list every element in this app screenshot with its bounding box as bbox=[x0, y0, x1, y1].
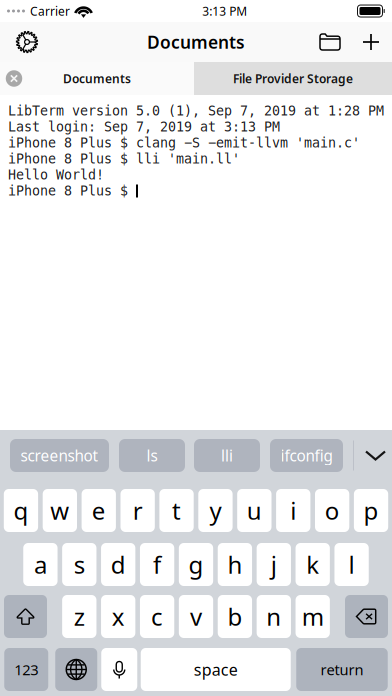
staticText: y bbox=[209, 494, 221, 527]
button[interactable]: q bbox=[4, 489, 38, 532]
staticText: m bbox=[302, 600, 324, 633]
staticText: q bbox=[13, 494, 28, 527]
button[interactable]: 123 bbox=[4, 648, 48, 691]
button[interactable]: Dictation bbox=[101, 648, 137, 691]
button[interactable]: w bbox=[43, 489, 77, 532]
button[interactable]: k bbox=[295, 543, 330, 586]
staticText: b bbox=[227, 600, 242, 633]
staticText: screenshot bbox=[20, 445, 98, 466]
staticText: Carrier bbox=[30, 3, 70, 19]
staticText: ls bbox=[146, 445, 157, 466]
staticText: Last login: Sep 7, 2019 at 3:13 PM bbox=[8, 119, 280, 135]
staticText: r bbox=[133, 494, 143, 527]
button[interactable]: h bbox=[218, 543, 252, 586]
staticText: 3:13 PM bbox=[202, 3, 247, 19]
button[interactable]: b bbox=[218, 595, 252, 638]
button[interactable]: e bbox=[82, 489, 116, 532]
staticText: n bbox=[266, 600, 281, 633]
button[interactable]: z bbox=[62, 595, 96, 638]
button[interactable]: Delete bbox=[345, 595, 388, 638]
staticText: Documents bbox=[147, 30, 245, 54]
staticText: k bbox=[306, 548, 319, 581]
button[interactable]: u bbox=[237, 489, 271, 532]
button[interactable]: Close bbox=[0, 62, 28, 95]
button[interactable]: Settings bbox=[0, 22, 54, 62]
button[interactable]: p bbox=[354, 489, 388, 532]
button[interactable]: s bbox=[62, 543, 96, 586]
button[interactable]: f bbox=[140, 543, 174, 586]
button[interactable]: Shift bbox=[4, 595, 47, 638]
staticText: Documents bbox=[63, 70, 131, 87]
staticText: w bbox=[50, 494, 69, 527]
staticText: h bbox=[227, 548, 242, 581]
staticText: lli bbox=[221, 445, 233, 466]
button[interactable]: y bbox=[198, 489, 233, 532]
button[interactable]: t bbox=[159, 489, 194, 532]
button[interactable]: m bbox=[295, 595, 330, 638]
button[interactable]: g bbox=[179, 543, 213, 586]
staticText: u bbox=[247, 494, 262, 527]
button[interactable]: d bbox=[101, 543, 135, 586]
staticText: LibTerm version 5.0 (1), Sep 7, 2019 at … bbox=[8, 103, 384, 119]
button[interactable]: j bbox=[257, 543, 291, 586]
button[interactable]: space bbox=[141, 648, 291, 691]
button[interactable]: Documents bbox=[0, 62, 194, 95]
staticText: g bbox=[188, 548, 203, 581]
staticText: f bbox=[153, 548, 161, 581]
button[interactable]: File Provider Storage bbox=[194, 62, 392, 95]
button[interactable]: Hide keyboard bbox=[359, 439, 392, 472]
button[interactable]: v bbox=[179, 595, 213, 638]
button[interactable]: return bbox=[296, 648, 388, 691]
staticText: a bbox=[34, 548, 47, 581]
staticText: c bbox=[151, 600, 163, 633]
staticText: iPhone 8 Plus $ lli 'main.ll' bbox=[8, 151, 240, 167]
button[interactable]: i bbox=[276, 489, 310, 532]
staticText: i bbox=[290, 494, 296, 527]
button[interactable]: Add bbox=[350, 22, 392, 62]
staticText: iPhone 8 Plus $ bbox=[8, 183, 136, 199]
staticText: d bbox=[111, 548, 126, 581]
button[interactable]: x bbox=[101, 595, 135, 638]
staticText: o bbox=[325, 494, 340, 527]
staticText: p bbox=[363, 494, 378, 527]
staticText: Hello World! bbox=[8, 167, 104, 183]
staticText: j bbox=[271, 548, 277, 581]
button[interactable]: r bbox=[120, 489, 155, 532]
button[interactable]: n bbox=[257, 595, 291, 638]
staticText: 123 bbox=[14, 659, 38, 679]
staticText: v bbox=[190, 600, 202, 633]
button[interactable]: a bbox=[23, 543, 57, 586]
staticText: x bbox=[112, 600, 125, 633]
button[interactable]: ifconfig bbox=[270, 439, 343, 472]
staticText: iPhone 8 Plus $ clang −S −emit-llvm 'mai… bbox=[8, 135, 360, 151]
staticText: space bbox=[194, 659, 238, 680]
button[interactable]: lli bbox=[194, 439, 260, 472]
staticText: t bbox=[172, 494, 181, 527]
button[interactable]: l bbox=[334, 543, 369, 586]
staticText: File Provider Storage bbox=[233, 70, 353, 87]
button[interactable]: New folder bbox=[310, 22, 350, 62]
staticText: e bbox=[92, 494, 106, 527]
staticText: return bbox=[320, 659, 363, 679]
button[interactable]: screenshot bbox=[10, 439, 109, 472]
staticText: s bbox=[74, 548, 85, 581]
staticText: l bbox=[349, 548, 355, 581]
staticText: z bbox=[74, 600, 85, 633]
button[interactable]: Next keyboard bbox=[55, 648, 97, 691]
button[interactable]: c bbox=[140, 595, 174, 638]
button[interactable]: o bbox=[315, 489, 349, 532]
button[interactable]: ls bbox=[119, 439, 185, 472]
staticText: ifconfig bbox=[280, 445, 332, 466]
